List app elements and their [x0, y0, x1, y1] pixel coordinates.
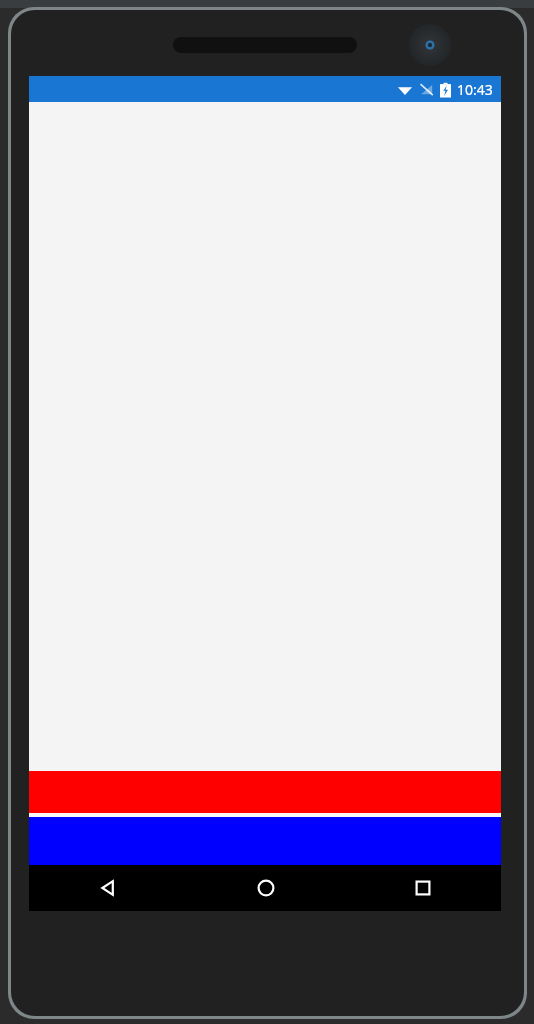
button[interactable]: Back: [29, 865, 187, 911]
staticText: 10:43: [457, 80, 493, 99]
button[interactable]: Home: [187, 865, 344, 911]
button[interactable]: Recent apps: [344, 865, 501, 911]
